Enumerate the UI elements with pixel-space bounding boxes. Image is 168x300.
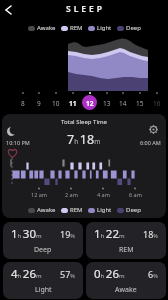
staticText: Total Sleep Time: [61, 118, 107, 126]
button[interactable]: 12: [81, 91, 98, 111]
staticText: 13: [103, 99, 111, 108]
staticText: Light: [97, 24, 112, 32]
staticText: SLEEP: [66, 3, 106, 15]
button[interactable]: 9: [30, 91, 47, 111]
staticText: Awake: [115, 285, 137, 295]
button[interactable]: 15: [131, 91, 148, 111]
button[interactable]: [149, 125, 158, 134]
staticText: 2 am: [65, 191, 78, 198]
staticText: Light: [35, 285, 52, 295]
staticText: Deep: [126, 24, 141, 32]
button[interactable]: 11: [64, 91, 81, 111]
staticText: REM: [119, 245, 134, 255]
staticText: 14: [119, 99, 127, 108]
button[interactable]: 0h 26m: [86, 262, 166, 299]
staticText: Deep: [126, 206, 141, 214]
staticText: Awake: [37, 24, 56, 32]
button[interactable]: 14: [114, 91, 131, 111]
staticText: 1h 22m: [94, 226, 125, 242]
staticText: REM: [70, 24, 83, 32]
button[interactable]: 4h 26m: [3, 262, 83, 299]
staticText: REM: [70, 206, 83, 214]
staticText: Light: [97, 206, 112, 214]
button[interactable]: 13: [98, 91, 115, 111]
staticText: 18%: [143, 228, 158, 240]
staticText: 10:10 PM: [6, 139, 30, 146]
staticText: 19%: [60, 228, 75, 240]
staticText: 1h 30m: [11, 226, 42, 242]
staticText: 6:00 AM: [140, 139, 161, 146]
staticText: 4 am: [97, 191, 110, 198]
button[interactable]: 1h 30m: [3, 222, 83, 259]
button[interactable]: Total Sleep Time: [2, 114, 166, 218]
staticText: Deep: [34, 245, 52, 255]
staticText: 7h 18m: [67, 131, 101, 148]
staticText: 6 am: [129, 191, 142, 198]
staticText: 6%: [148, 268, 158, 280]
staticText: Awake: [37, 206, 56, 214]
button[interactable]: 10: [47, 91, 64, 111]
staticText: 10: [52, 99, 60, 108]
staticText: 12: [86, 99, 94, 108]
button[interactable]: 1h 22m: [86, 222, 166, 259]
staticText: 57%: [60, 268, 75, 280]
staticText: 11: [69, 99, 77, 108]
staticText: 15: [136, 99, 144, 108]
staticText: 16: [153, 99, 161, 108]
staticText: 9: [37, 99, 41, 108]
button[interactable]: 8: [14, 91, 31, 111]
button[interactable]: 16: [148, 91, 165, 111]
staticText: 4h 26m: [11, 266, 42, 282]
staticText: 8: [21, 99, 25, 108]
staticText: 0h 26m: [94, 266, 125, 282]
staticText: 12 am: [31, 191, 47, 198]
button[interactable]: [2, 3, 16, 17]
